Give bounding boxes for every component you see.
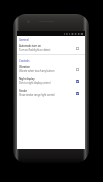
staticText: Dim to night display control	[19, 81, 51, 85]
other: Unchecked	[76, 68, 79, 71]
button[interactable]: Night display	[17, 75, 85, 87]
staticText: Automatic turn on	[19, 44, 41, 48]
button[interactable]: Strobe	[17, 87, 85, 99]
staticText: Controls	[19, 59, 30, 63]
staticText: Turn on flashlight on detect	[19, 48, 51, 52]
other: Unchecked	[76, 47, 79, 50]
staticText: Strobe	[19, 89, 27, 93]
staticText: Night display	[19, 77, 35, 81]
other: Checked	[76, 92, 79, 95]
staticText: Vibrate when touch any button	[19, 69, 55, 73]
other: Checked	[76, 80, 79, 83]
staticText: General	[19, 38, 29, 42]
button[interactable]: Automatic turn on	[17, 42, 85, 54]
staticText: Vibration	[19, 65, 30, 69]
staticText: Show strobe range light control	[19, 93, 55, 97]
button[interactable]: Vibration	[17, 63, 85, 75]
